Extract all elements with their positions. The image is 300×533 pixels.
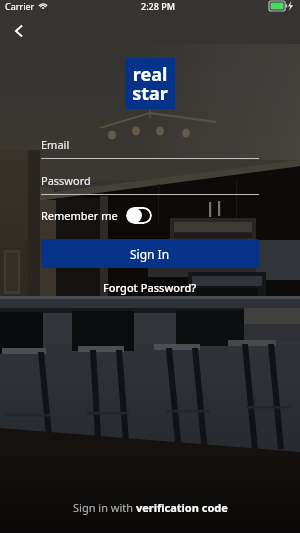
button[interactable]: Sign in with verification code xyxy=(73,500,228,515)
staticText: Email xyxy=(41,137,70,152)
staticText: Remember me xyxy=(41,208,118,223)
staticText: Sign In xyxy=(130,246,170,262)
staticText: Carrier xyxy=(5,0,35,12)
button[interactable]: Back xyxy=(8,20,30,42)
button[interactable]: Remember me toggle xyxy=(126,207,152,224)
staticText: real star xyxy=(132,62,168,105)
button[interactable]: Sign In xyxy=(41,239,259,268)
staticText: Password xyxy=(41,173,91,188)
button[interactable]: Forgot Password? xyxy=(103,280,197,295)
staticText: 2:28 PM xyxy=(141,0,175,12)
